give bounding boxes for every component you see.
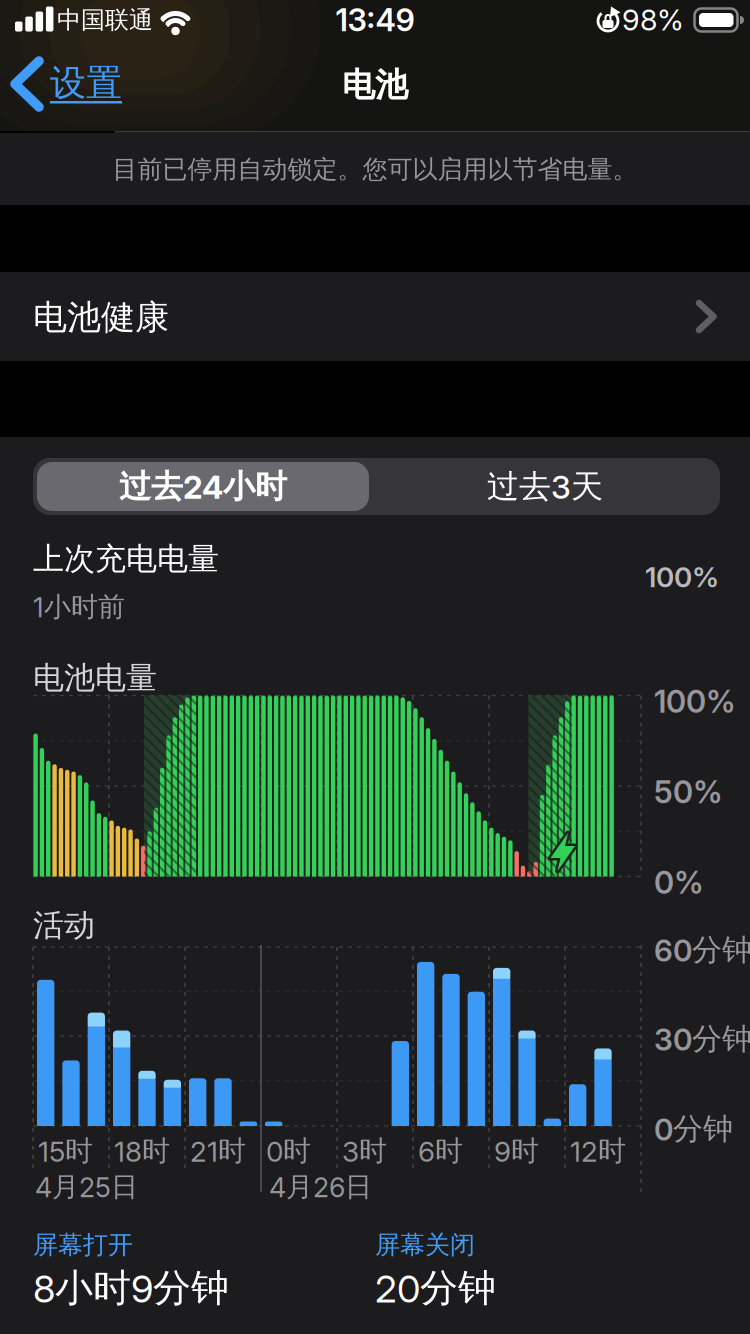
button[interactable]: 过去3天 (379, 462, 711, 511)
staticText: 目前已停用自动锁定。您可以启用以节省电量。 (112, 154, 637, 185)
staticText: 1小时前 (33, 590, 125, 624)
staticText: 过去3天 (487, 466, 603, 507)
staticText: 30分钟 (654, 1020, 750, 1058)
staticText: 98% (622, 2, 684, 38)
staticText: 电池 (342, 64, 408, 106)
staticText: 3时 (342, 1133, 387, 1169)
staticText: 0时 (266, 1133, 311, 1169)
staticText: 15时 (38, 1133, 93, 1169)
staticText: 60分钟 (654, 931, 750, 969)
staticText: 过去24小时 (119, 466, 287, 507)
staticText: 100% (654, 683, 736, 720)
staticText: 上次充电电量 (33, 539, 219, 579)
staticText: 0分钟 (654, 1110, 733, 1148)
staticText: 电池电量 (33, 658, 157, 698)
staticText: 18时 (114, 1133, 170, 1169)
staticText: 屏幕打开 (33, 1229, 133, 1261)
staticText: 0% (654, 864, 704, 901)
staticText: 6时 (418, 1133, 463, 1169)
staticText: 中国联通 (57, 5, 153, 35)
staticText: 50% (654, 773, 723, 811)
staticText: 设置 (50, 60, 122, 106)
button[interactable]: 设置 (10, 53, 140, 115)
staticText: 活动 (33, 906, 95, 945)
staticText: 13:49 (335, 1, 414, 39)
button[interactable]: 过去24小时 (37, 462, 369, 511)
staticText: 12时 (570, 1133, 626, 1169)
staticText: 电池健康 (33, 296, 169, 339)
staticText: 4月26日 (269, 1170, 372, 1204)
staticText: 100% (645, 560, 719, 594)
staticText: 4月25日 (35, 1170, 138, 1204)
staticText: 8小时9分钟 (33, 1264, 229, 1312)
staticText: 9时 (494, 1133, 539, 1169)
staticText: 20分钟 (375, 1264, 496, 1312)
staticText: 屏幕关闭 (375, 1229, 475, 1261)
staticText: 21时 (190, 1133, 246, 1169)
button[interactable]: 电池健康 (0, 272, 750, 361)
